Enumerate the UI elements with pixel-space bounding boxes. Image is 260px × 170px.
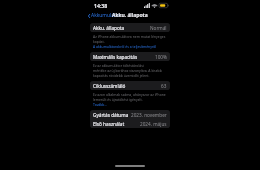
staticText: 100%	[155, 54, 167, 60]
staticText: Akkumulátor	[91, 12, 121, 19]
staticText: Akku. állapota	[93, 25, 125, 31]
button[interactable]: Akku. állapota	[90, 23, 170, 32]
staticText: Ez azon alkalmak száma, ahányszor az iPh…	[93, 92, 166, 97]
button[interactable]: A akkumulátorokról és a teljesítményről	[93, 44, 157, 49]
button[interactable]: Tovább…	[93, 102, 108, 107]
staticText: 14:38	[94, 2, 108, 9]
staticText: Akku. állapota	[112, 12, 148, 19]
staticText: kapacitás rövidebb üzemidőt jelent.	[93, 73, 150, 78]
other: Back	[88, 14, 90, 18]
staticText: lemerült és újratöltést igényelt.	[93, 97, 143, 102]
staticText: 2024. május	[140, 121, 167, 127]
staticText: Normál	[150, 25, 167, 31]
button[interactable]: Első használat	[90, 119, 170, 128]
button[interactable]: Maximális kapacitás	[90, 52, 170, 61]
staticText: 2023. november	[131, 112, 167, 118]
button[interactable]: Back	[85, 11, 124, 20]
button[interactable]: Gyártás dátuma	[90, 110, 170, 119]
staticText: Ez az akkumulátor töltéstárolási kapacit…	[93, 63, 167, 68]
staticText: 63	[161, 83, 167, 89]
staticText: Maximális kapacitás	[93, 54, 138, 60]
staticText: Első használat	[93, 121, 125, 127]
staticText: kopást.	[93, 39, 105, 44]
staticText: Ciklusszámláló	[93, 83, 126, 89]
staticText: Az iPhone akkumulátora nem mutat lényege…	[93, 34, 166, 39]
button[interactable]: Ciklusszámláló	[90, 81, 170, 90]
staticText: Gyártás dátuma	[93, 112, 129, 118]
staticText: mértéke az új korához viszonyítva. A kis…	[93, 68, 162, 73]
